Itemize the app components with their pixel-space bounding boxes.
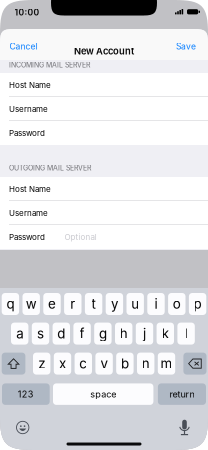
staticText: INCOMING MAIL SERVER bbox=[9, 61, 90, 69]
staticText: OUTGOING MAIL SERVER bbox=[9, 164, 91, 172]
staticText: Host Name bbox=[9, 80, 51, 90]
button[interactable]: g bbox=[94, 323, 112, 345]
staticText: r bbox=[70, 296, 75, 312]
button[interactable]: Delete bbox=[183, 353, 206, 375]
button[interactable]: Dictate bbox=[178, 419, 190, 435]
button[interactable]: z bbox=[33, 353, 50, 375]
staticText: l bbox=[185, 325, 188, 342]
button[interactable]: p bbox=[189, 293, 206, 315]
staticText: Save bbox=[176, 41, 196, 52]
button[interactable]: k bbox=[157, 323, 174, 345]
staticText: c bbox=[79, 355, 87, 372]
button[interactable]: Password bbox=[0, 225, 208, 249]
staticText: k bbox=[162, 325, 169, 342]
staticText: New Account bbox=[74, 46, 134, 57]
staticText: p bbox=[194, 296, 202, 312]
staticText: o bbox=[173, 296, 181, 312]
staticText: y bbox=[111, 296, 118, 312]
button[interactable]: u bbox=[126, 293, 144, 315]
staticText: space bbox=[90, 389, 116, 400]
staticText: 10:00 bbox=[14, 7, 39, 17]
staticText: Password bbox=[9, 128, 45, 138]
button[interactable]: Save bbox=[150, 36, 208, 56]
button[interactable]: w bbox=[22, 293, 40, 315]
staticText: Optional bbox=[64, 232, 96, 242]
staticText: h bbox=[120, 325, 128, 342]
staticText: i bbox=[154, 296, 157, 312]
staticText: b bbox=[121, 355, 129, 372]
button[interactable]: e bbox=[43, 293, 61, 315]
staticText: 123 bbox=[18, 389, 34, 400]
staticText: s bbox=[37, 325, 44, 342]
button[interactable]: q bbox=[2, 293, 19, 315]
button[interactable]: v bbox=[95, 353, 113, 375]
staticText: Username bbox=[9, 208, 48, 218]
button[interactable]: b bbox=[116, 353, 134, 375]
staticText: d bbox=[57, 325, 65, 342]
staticText: return bbox=[169, 389, 194, 400]
staticText: v bbox=[101, 355, 108, 372]
staticText: g bbox=[99, 325, 107, 342]
button[interactable]: m bbox=[158, 353, 175, 375]
staticText: w bbox=[26, 296, 37, 312]
button[interactable]: r bbox=[64, 293, 81, 315]
button[interactable]: 123 bbox=[2, 383, 50, 405]
staticText: n bbox=[142, 355, 150, 372]
button[interactable]: Host Name bbox=[0, 177, 208, 201]
staticText: q bbox=[6, 296, 14, 312]
staticText: Password bbox=[9, 232, 45, 242]
button[interactable]: return bbox=[158, 383, 206, 405]
button[interactable]: t bbox=[85, 293, 102, 315]
button[interactable]: a bbox=[11, 323, 28, 345]
button[interactable]: f bbox=[73, 323, 91, 345]
button[interactable]: d bbox=[53, 323, 70, 345]
button[interactable]: o bbox=[168, 293, 185, 315]
button[interactable]: Username bbox=[0, 201, 208, 225]
button[interactable]: space bbox=[53, 383, 153, 405]
button[interactable]: h bbox=[115, 323, 132, 345]
staticText: t bbox=[92, 296, 96, 312]
button[interactable]: x bbox=[54, 353, 71, 375]
button[interactable]: l bbox=[177, 323, 195, 345]
button[interactable]: Host Name bbox=[0, 73, 208, 97]
button[interactable]: Password bbox=[0, 121, 208, 145]
staticText: x bbox=[59, 355, 66, 372]
staticText: z bbox=[38, 355, 45, 372]
staticText: j bbox=[143, 325, 146, 342]
staticText: Cancel bbox=[9, 41, 37, 52]
button[interactable]: s bbox=[32, 323, 49, 345]
staticText: u bbox=[131, 296, 139, 312]
button[interactable]: c bbox=[75, 353, 92, 375]
button[interactable]: n bbox=[137, 353, 154, 375]
staticText: a bbox=[16, 325, 23, 342]
staticText: f bbox=[80, 325, 85, 342]
button[interactable]: y bbox=[106, 293, 123, 315]
staticText: m bbox=[160, 355, 172, 372]
staticText: Username bbox=[9, 104, 48, 114]
button[interactable]: Cancel bbox=[0, 36, 58, 56]
button[interactable]: Emoji bbox=[16, 421, 29, 434]
button[interactable]: i bbox=[147, 293, 165, 315]
staticText: e bbox=[48, 296, 56, 312]
button[interactable]: j bbox=[136, 323, 153, 345]
staticText: Host Name bbox=[9, 184, 51, 194]
button[interactable]: Shift bbox=[2, 353, 25, 375]
button[interactable]: Username bbox=[0, 97, 208, 121]
